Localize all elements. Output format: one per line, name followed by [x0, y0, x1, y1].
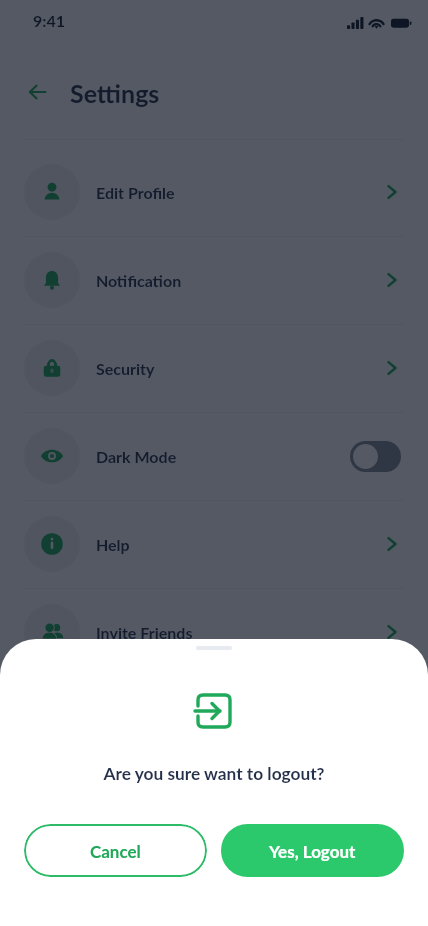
staticText: Invite Friends [96, 623, 388, 642]
button[interactable]: Cancel [24, 824, 207, 877]
staticText: Cancel [90, 841, 141, 861]
button[interactable]: Edit Profile [0, 148, 428, 236]
button[interactable]: Dark Mode toggle [350, 441, 401, 472]
staticText: Settings [70, 78, 160, 108]
button[interactable]: Back [22, 77, 52, 107]
button[interactable]: Notification [0, 236, 428, 324]
staticText: Edit Profile [96, 183, 388, 202]
staticText: 9:41 [33, 11, 65, 30]
staticText: Security [96, 359, 388, 378]
staticText: Are you sure want to logout? [103, 763, 325, 784]
staticText: Dark Mode [96, 447, 353, 466]
staticText: Notification [96, 271, 388, 290]
button[interactable]: Security [0, 324, 428, 412]
staticText: Help [96, 535, 388, 554]
button[interactable]: Invite Friends [0, 588, 428, 676]
button[interactable]: Yes, Logout [221, 824, 404, 877]
button[interactable]: Dark Mode [0, 412, 428, 500]
staticText: Yes, Logout [269, 841, 356, 861]
button[interactable]: Help [0, 500, 428, 588]
